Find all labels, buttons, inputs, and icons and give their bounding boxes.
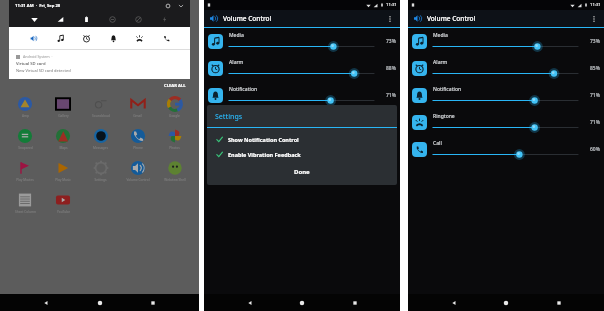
button[interactable]: Enable Vibration Feedback bbox=[207, 149, 397, 160]
staticText: Snapseed bbox=[18, 146, 33, 150]
staticText: Amp bbox=[22, 114, 29, 118]
staticText: Messages bbox=[93, 146, 108, 150]
button[interactable]: Notification bbox=[204, 82, 400, 109]
button[interactable]: Messages bbox=[82, 128, 119, 150]
other: Alarm bbox=[412, 61, 427, 76]
button[interactable]: Media bbox=[408, 28, 604, 55]
staticText: Gallery bbox=[58, 114, 69, 118]
button[interactable]: battery bbox=[82, 15, 91, 24]
staticText: 73% bbox=[590, 38, 600, 45]
button[interactable]: Photos bbox=[156, 128, 193, 150]
button[interactable]: speaker bbox=[27, 32, 39, 44]
other: Media bbox=[208, 34, 223, 49]
button[interactable]: Recents bbox=[348, 296, 362, 310]
staticText: Soundcloud bbox=[92, 114, 110, 118]
button[interactable]: Done bbox=[286, 165, 318, 179]
button[interactable]: wifi bbox=[30, 15, 39, 24]
button[interactable]: Settings bbox=[165, 3, 171, 9]
button[interactable]: Webview Shell bbox=[156, 160, 193, 182]
button[interactable]: Ringtone bbox=[408, 109, 604, 136]
staticText: Android System · bbox=[23, 54, 53, 59]
button[interactable]: Volume Control bbox=[119, 160, 156, 182]
staticText: Settings bbox=[94, 178, 107, 182]
staticText: Done bbox=[294, 168, 310, 176]
button[interactable]: More options bbox=[384, 13, 396, 25]
staticText: Volume Control bbox=[223, 14, 272, 23]
button[interactable]: cast bbox=[160, 15, 169, 24]
other: Notification bbox=[208, 88, 223, 103]
button[interactable]: Sheet Column bbox=[6, 192, 44, 214]
button[interactable]: Back bbox=[243, 296, 257, 310]
button[interactable]: YouTube bbox=[44, 192, 82, 214]
button[interactable]: Alarm bbox=[408, 55, 604, 82]
button[interactable]: call bbox=[160, 32, 172, 44]
other: Call bbox=[412, 142, 427, 157]
button[interactable]: Expand bbox=[178, 3, 184, 9]
button[interactable]: signal bbox=[56, 15, 65, 24]
other: Notification bbox=[412, 88, 427, 103]
staticText: Photos bbox=[169, 146, 180, 150]
staticText: Sheet Column bbox=[15, 210, 36, 214]
button[interactable]: Notification bbox=[408, 82, 604, 109]
staticText: Webview Shell bbox=[164, 178, 186, 182]
button[interactable]: music bbox=[54, 32, 66, 44]
staticText: Media bbox=[229, 32, 244, 39]
button[interactable]: dnd bbox=[108, 15, 117, 24]
staticText: Notification bbox=[229, 86, 258, 93]
button[interactable]: Home bbox=[499, 296, 513, 310]
button[interactable]: Settings bbox=[82, 160, 119, 182]
staticText: 71% bbox=[590, 92, 600, 99]
button[interactable]: Phone bbox=[119, 128, 156, 150]
staticText: 71% bbox=[590, 119, 600, 126]
staticText: 73% bbox=[386, 38, 396, 45]
staticText: Notification bbox=[433, 86, 462, 93]
staticText: Virtual SD card bbox=[16, 61, 46, 67]
staticText: 11:31 bbox=[590, 2, 601, 8]
staticText: Show Notification Control bbox=[228, 136, 299, 143]
button[interactable]: CLEAR ALL bbox=[160, 82, 190, 90]
button[interactable]: Home bbox=[295, 296, 309, 310]
staticText: Gmail bbox=[133, 114, 142, 118]
staticText: Call bbox=[433, 140, 442, 147]
other: Ringtone bbox=[412, 115, 427, 130]
button[interactable]: Call bbox=[408, 136, 604, 163]
button[interactable]: More options bbox=[588, 13, 600, 25]
button[interactable]: flash2 bbox=[134, 15, 143, 24]
button[interactable]: Recents bbox=[146, 296, 160, 310]
button[interactable]: ring bbox=[133, 32, 145, 44]
staticText: 88% bbox=[386, 65, 396, 72]
button[interactable]: Show Notification Control bbox=[207, 134, 397, 145]
button[interactable]: Back bbox=[39, 296, 53, 310]
staticText: Maps bbox=[59, 146, 68, 150]
button[interactable]: Soundcloud bbox=[82, 96, 119, 118]
button[interactable]: Media bbox=[204, 28, 400, 55]
staticText: Google bbox=[169, 114, 180, 118]
button[interactable]: Play Music bbox=[44, 160, 82, 182]
staticText: 71% bbox=[386, 92, 396, 99]
button[interactable]: Play Movies bbox=[6, 160, 44, 182]
button[interactable]: Gmail bbox=[119, 96, 156, 118]
staticText: Alarm bbox=[433, 59, 448, 66]
staticText: 60% bbox=[590, 146, 600, 153]
staticText: 11:31 bbox=[386, 2, 397, 8]
staticText: Enable Vibration Feedback bbox=[228, 151, 301, 158]
staticText: Alarm bbox=[229, 59, 244, 66]
button[interactable]: Recents bbox=[552, 296, 566, 310]
button[interactable]: Maps bbox=[44, 128, 82, 150]
other: Media bbox=[412, 34, 427, 49]
button[interactable]: Alarm bbox=[204, 55, 400, 82]
button[interactable]: alarm bbox=[80, 32, 92, 44]
button[interactable]: Back bbox=[447, 296, 461, 310]
button[interactable]: Home bbox=[93, 296, 107, 310]
button[interactable]: Amp bbox=[6, 96, 44, 118]
staticText: Ringtone bbox=[433, 113, 455, 120]
button[interactable]: Snapseed bbox=[6, 128, 44, 150]
button[interactable]: Gallery bbox=[44, 96, 82, 118]
staticText: Media bbox=[433, 32, 448, 39]
staticText: Volume Control bbox=[427, 14, 476, 23]
button[interactable]: Google bbox=[156, 96, 193, 118]
button[interactable]: bell bbox=[107, 32, 119, 44]
